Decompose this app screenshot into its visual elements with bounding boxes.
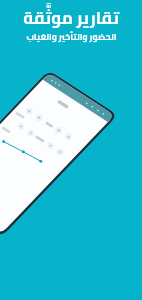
staticText: الحضور والتأخير والغياب (26, 29, 117, 45)
staticText: تقارير موثَّقة (23, 2, 119, 34)
